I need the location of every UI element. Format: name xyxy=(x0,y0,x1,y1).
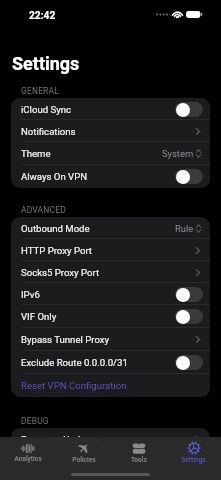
staticText: Theme xyxy=(21,148,51,159)
staticText: iCloud Sync xyxy=(21,104,72,115)
button[interactable]: Policies tab xyxy=(56,437,111,469)
staticText: Analytics xyxy=(14,455,42,463)
staticText: Rule xyxy=(175,223,194,234)
button[interactable]: HTTP Proxy Port xyxy=(11,239,210,261)
staticText: DEBUG xyxy=(21,416,49,426)
button[interactable]: Exclude Route 0.0.0.0/31 xyxy=(11,351,210,374)
staticText: Settings xyxy=(181,456,206,464)
button[interactable]: Notifications xyxy=(11,120,210,142)
staticText: Settings xyxy=(12,53,80,74)
button[interactable]: Theme xyxy=(11,142,210,165)
staticText: VIF Only xyxy=(21,311,57,322)
button[interactable]: Socks5 Proxy Port xyxy=(11,261,210,283)
staticText: Bypass Tunnel Proxy xyxy=(21,334,110,345)
button[interactable]: iCloud Sync xyxy=(11,98,210,120)
button[interactable]: Bypass Tunnel Proxy xyxy=(11,328,210,351)
button[interactable]: Settings tab xyxy=(166,437,221,469)
staticText: Resource Updates xyxy=(21,434,99,445)
staticText: Notifications xyxy=(21,126,76,137)
staticText: GENERAL xyxy=(21,86,59,96)
button[interactable]: Analytics tab xyxy=(0,437,56,469)
button[interactable]: Resource Updates xyxy=(11,428,210,450)
staticText: ADVANCED xyxy=(21,205,66,215)
staticText: Tools xyxy=(131,456,147,464)
staticText: Reset VPN Configuration xyxy=(21,380,127,391)
staticText: Exclude Route 0.0.0.0/31 xyxy=(21,357,128,368)
button[interactable]: VIF Only xyxy=(11,305,210,328)
button[interactable]: Tools tab xyxy=(111,437,166,469)
staticText: Policies xyxy=(72,456,96,464)
staticText: System xyxy=(162,148,194,159)
staticText: HTTP Proxy Port xyxy=(21,245,93,256)
button[interactable]: IPv6 xyxy=(11,283,210,305)
staticText: IPv6 xyxy=(21,289,40,300)
staticText: 22:42 xyxy=(29,10,56,22)
button[interactable]: Always On VPN xyxy=(11,165,210,188)
button[interactable]: Outbound Mode xyxy=(11,217,210,239)
button[interactable]: Reset VPN Configuration xyxy=(11,374,210,397)
staticText: Always On VPN xyxy=(21,171,88,182)
staticText: Outbound Mode xyxy=(21,223,90,234)
staticText: Socks5 Proxy Port xyxy=(21,267,100,278)
